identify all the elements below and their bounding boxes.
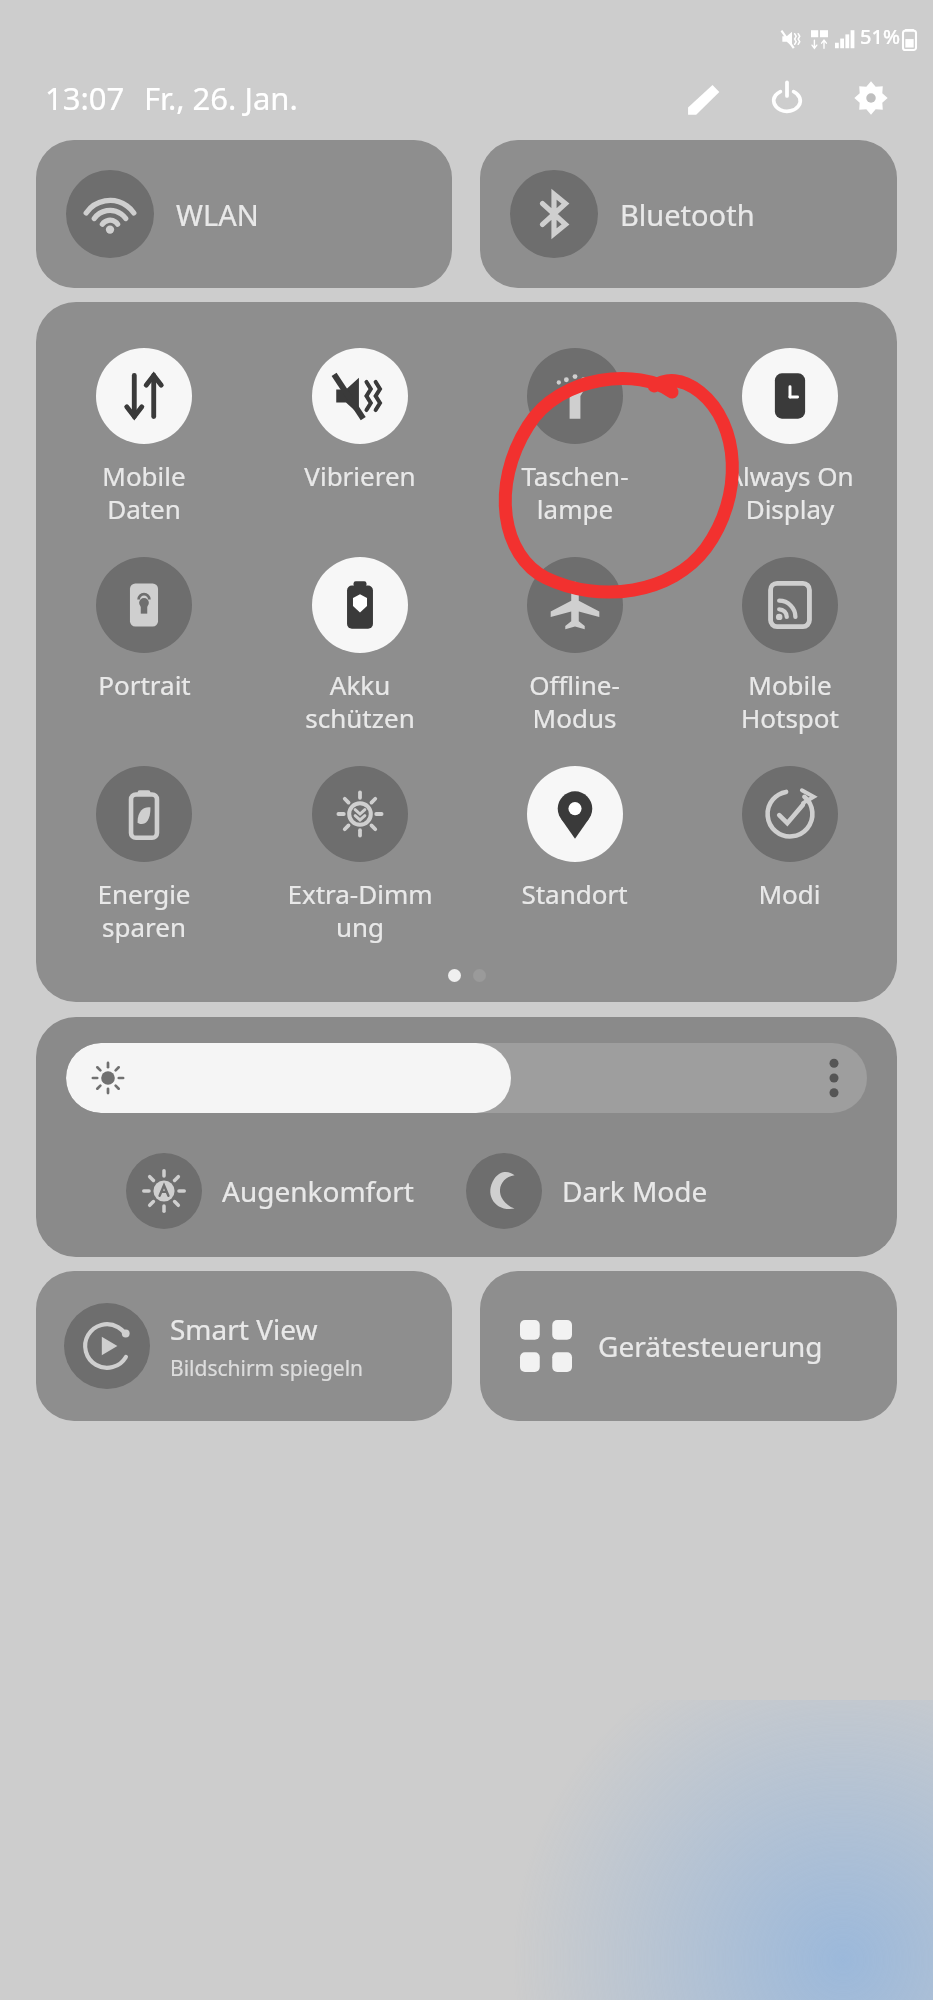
staticText: Offline- Modus xyxy=(529,667,620,736)
staticText: Smart View xyxy=(170,1310,318,1348)
staticText: 51% xyxy=(860,23,900,50)
button[interactable]: Smart View xyxy=(36,1271,452,1421)
button[interactable]: Ein/Aus xyxy=(761,72,813,124)
staticText: Mobile Daten xyxy=(102,458,186,527)
staticText: Always On Display xyxy=(726,458,854,527)
staticText: Extra-Dimm ung xyxy=(287,876,433,945)
button[interactable]: Energie sparen xyxy=(36,764,252,947)
button[interactable]: Always On Display xyxy=(682,346,897,529)
staticText: Portrait xyxy=(98,667,191,702)
staticText: 13:07 xyxy=(45,77,125,119)
staticText: Bildschirm spiegeln xyxy=(170,1354,364,1383)
button[interactable]: Gerätesteuerung xyxy=(480,1271,897,1421)
button[interactable]: Bluetooth xyxy=(480,140,897,288)
button[interactable]: Einstellungen xyxy=(845,72,897,124)
staticText: Augenkomfort xyxy=(222,1172,414,1210)
staticText: Taschen- lampe xyxy=(521,458,629,527)
staticText: WLAN xyxy=(176,195,259,234)
staticText: Fr., 26. Jan. xyxy=(144,77,298,119)
button[interactable]: Helligkeit xyxy=(66,1043,867,1113)
staticText: Vibrieren xyxy=(304,458,416,493)
staticText: Dark Mode xyxy=(562,1172,708,1210)
button[interactable]: Standort xyxy=(467,764,682,913)
button[interactable]: Mobile Daten xyxy=(36,346,252,529)
button[interactable]: Offline- Modus xyxy=(467,555,682,738)
button[interactable]: Akku schützen xyxy=(252,555,467,738)
button[interactable]: Bearbeiten xyxy=(677,72,729,124)
staticText: Standort xyxy=(521,876,628,911)
button[interactable]: Dark Mode xyxy=(466,1153,897,1229)
button[interactable]: WLAN xyxy=(36,140,452,288)
staticText: Gerätesteuerung xyxy=(598,1327,823,1365)
button[interactable]: Portrait xyxy=(36,555,252,704)
staticText: Energie sparen xyxy=(97,876,191,945)
staticText: Modi xyxy=(758,876,821,911)
button[interactable]: Mobile Hotspot xyxy=(682,555,897,738)
button[interactable]: Vibrieren xyxy=(252,346,467,495)
button[interactable]: Modi xyxy=(682,764,897,913)
button[interactable]: Extra-Dimm ung xyxy=(252,764,467,947)
staticText: Bluetooth xyxy=(620,195,755,234)
button[interactable]: Taschen- lampe xyxy=(467,346,682,529)
staticText: Mobile Hotspot xyxy=(741,667,839,736)
button[interactable]: Augenkomfort xyxy=(126,1153,466,1229)
staticText: Akku schützen xyxy=(305,667,415,736)
